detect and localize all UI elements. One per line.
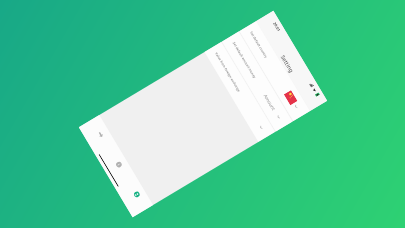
- button[interactable]: Set default country: [239, 21, 310, 121]
- staticText: Setting: [279, 54, 295, 74]
- staticText: Set default country: [249, 30, 268, 59]
- staticText: Value from foreign exchange: [214, 51, 241, 93]
- button[interactable]: Account: [121, 175, 153, 214]
- staticText: Amount: [262, 93, 277, 112]
- button[interactable]: Information: [103, 145, 135, 184]
- button[interactable]: Set default amount money: [222, 32, 292, 131]
- staticText: Set default amount money: [231, 41, 257, 79]
- staticText: 20:01: [272, 21, 282, 32]
- button[interactable]: Value from foreign exchange: [204, 42, 275, 142]
- button[interactable]: Transfer: [85, 115, 117, 154]
